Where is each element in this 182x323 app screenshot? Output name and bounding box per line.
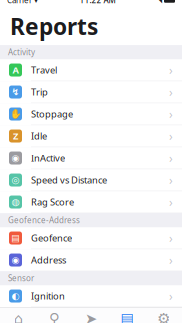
staticText: ⌂ <box>14 310 23 323</box>
staticText: ◎ <box>11 175 19 185</box>
staticText: Activity <box>8 47 35 57</box>
button[interactable]: Reports <box>109 308 146 323</box>
button[interactable]: ◉ <box>0 147 182 169</box>
staticText: › <box>169 62 173 78</box>
staticText: › <box>169 84 173 100</box>
staticText: ◉ <box>11 255 19 265</box>
button[interactable]: Navigate <box>73 308 109 323</box>
staticText: ◉ <box>11 153 19 163</box>
staticText: ▾ <box>34 0 38 5</box>
staticText: Geofence-Address <box>8 215 80 225</box>
button[interactable]: Z <box>0 125 182 147</box>
staticText: › <box>169 288 173 304</box>
staticText: › <box>169 230 173 246</box>
button[interactable]: Settings <box>146 308 182 323</box>
staticText: › <box>169 172 173 188</box>
staticText: › <box>169 194 173 210</box>
staticText: InActive <box>31 152 65 164</box>
staticText: ✋ <box>9 109 21 119</box>
button[interactable]: ✋ <box>0 103 182 125</box>
button[interactable]: ↯ <box>0 81 182 103</box>
staticText: ⚲ <box>49 310 60 323</box>
staticText: Address <box>31 254 66 266</box>
staticText: Carrier <box>7 0 32 5</box>
staticText: Stoppage <box>31 108 73 120</box>
button[interactable]: ◍ <box>0 191 182 213</box>
staticText: Reports <box>10 11 98 41</box>
staticText: › <box>169 128 173 144</box>
staticText: › <box>169 106 173 122</box>
staticText: ↯ <box>11 87 19 97</box>
button[interactable]: A <box>0 59 182 81</box>
staticText: › <box>169 150 173 166</box>
staticText: ▤ <box>120 310 134 323</box>
staticText: Trip <box>31 86 48 98</box>
staticText: Speed vs Distance <box>31 174 107 186</box>
button[interactable]: Location <box>36 308 73 323</box>
staticText: ◥ <box>157 0 162 4</box>
button[interactable]: ◐ <box>0 285 182 307</box>
staticText: ▤ <box>11 233 20 243</box>
button[interactable]: Home <box>0 308 36 323</box>
staticText: › <box>169 252 173 268</box>
staticText: ◐ <box>11 291 19 301</box>
staticText: Geofence <box>31 232 72 244</box>
button[interactable]: ◎ <box>0 169 182 191</box>
staticText: Rag Score <box>31 196 74 208</box>
staticText: Z <box>13 130 18 142</box>
staticText: A <box>12 64 18 76</box>
staticText: ➤ <box>85 310 97 323</box>
staticText: ◍ <box>11 197 19 207</box>
button[interactable]: ◉ <box>0 249 182 271</box>
staticText: Sensor <box>8 273 34 283</box>
staticText: Travel <box>31 64 57 76</box>
button[interactable]: ▤ <box>0 227 182 249</box>
staticText: Ignition <box>31 290 65 302</box>
staticText: ⚙ <box>157 310 170 323</box>
staticText: Idle <box>31 130 47 142</box>
staticText: 11:22 AM <box>79 0 115 5</box>
